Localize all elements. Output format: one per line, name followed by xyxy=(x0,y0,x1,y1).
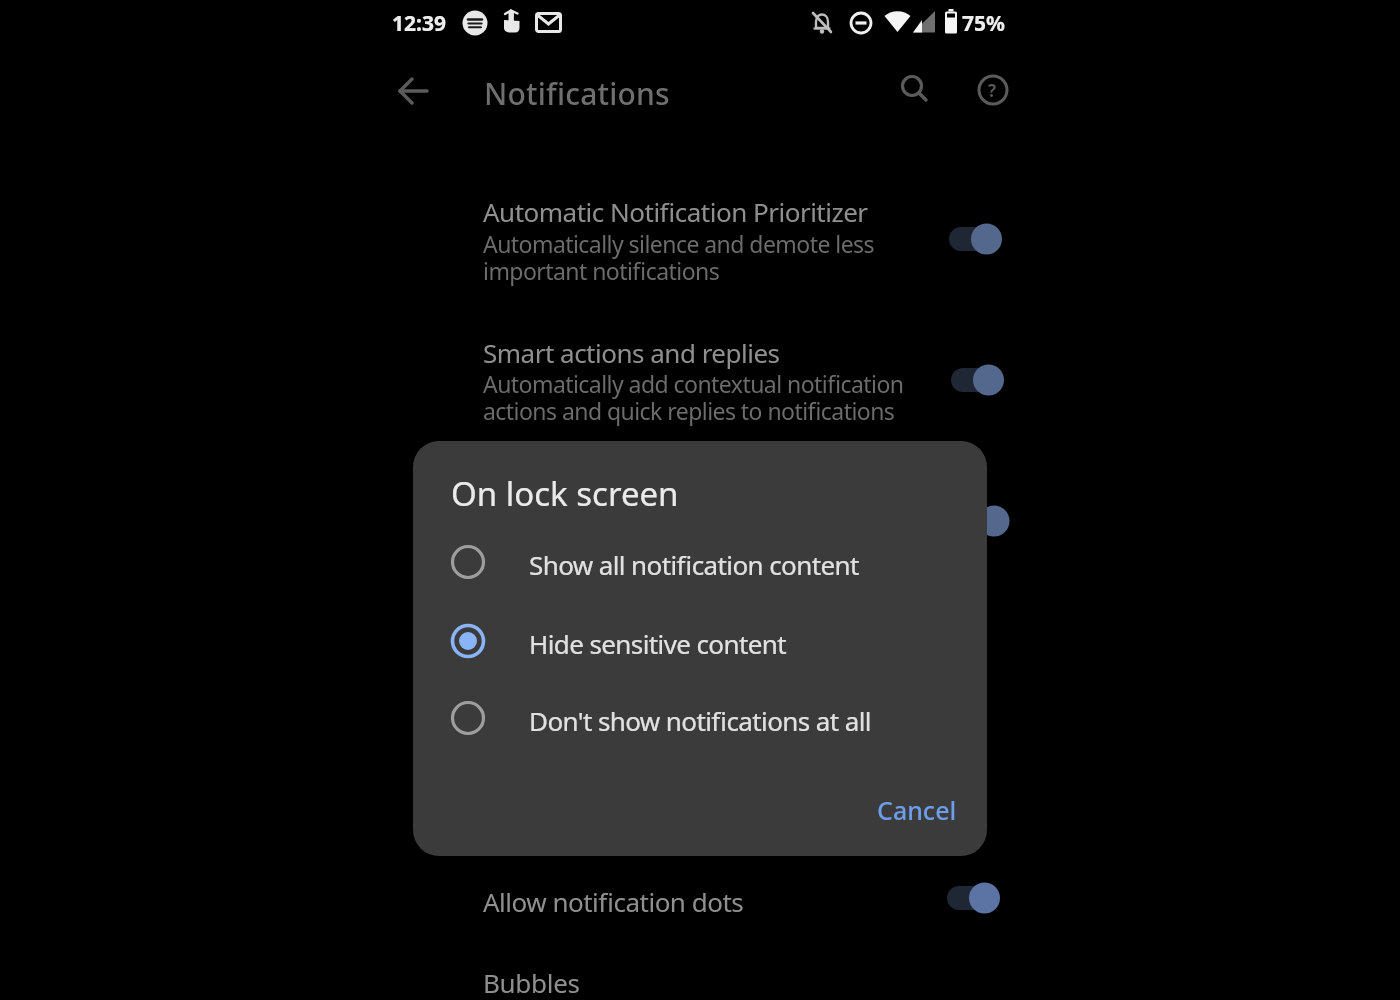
staticText: actions and quick replies to notificatio… xyxy=(483,395,895,426)
button[interactable] xyxy=(460,186,1020,296)
staticText: Show all notification content xyxy=(529,547,859,582)
staticText: ? xyxy=(988,79,997,102)
staticText: 75% xyxy=(962,9,1005,38)
button[interactable] xyxy=(948,223,1002,255)
button[interactable] xyxy=(448,542,488,582)
button[interactable] xyxy=(950,364,1004,396)
button[interactable] xyxy=(396,74,432,110)
button[interactable] xyxy=(460,328,1020,438)
staticText: Hide sensitive content xyxy=(529,626,787,661)
staticText: Automatically silence and demote less xyxy=(483,228,874,259)
staticText: Bubbles xyxy=(483,965,580,1000)
button[interactable]: ? xyxy=(975,72,1011,108)
staticText: Notifications xyxy=(484,73,670,114)
button[interactable] xyxy=(897,72,933,108)
staticText: Automatically add contextual notificatio… xyxy=(483,368,904,399)
button[interactable] xyxy=(448,621,488,661)
button[interactable]: Cancel xyxy=(861,787,961,831)
staticText: Allow notification dots xyxy=(483,884,744,919)
staticText: important notifications xyxy=(483,255,720,286)
button[interactable] xyxy=(946,882,1000,914)
staticText: On lock screen xyxy=(451,471,679,516)
staticText: Automatic Notification Prioritizer xyxy=(483,194,868,229)
staticText: 12:39 xyxy=(392,9,446,38)
staticText: Don't show notifications at all xyxy=(529,703,871,738)
staticText: Smart actions and replies xyxy=(483,335,780,370)
button[interactable] xyxy=(448,698,488,738)
staticText: Cancel xyxy=(877,793,957,827)
